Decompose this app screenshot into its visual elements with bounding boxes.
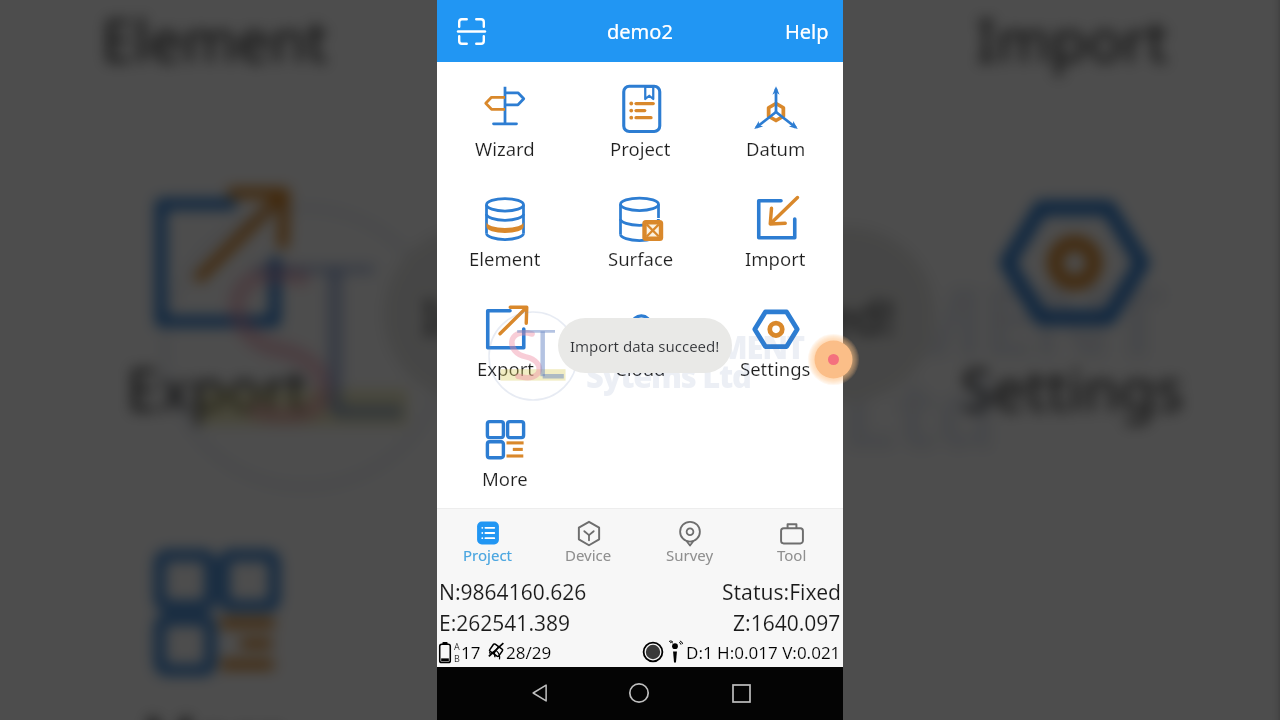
button[interactable]: More [437,414,573,508]
staticText: Sytems Ltd [472,344,995,477]
staticText: Import [745,246,806,271]
staticText: Datum [746,136,806,161]
button[interactable]: Scan [453,13,489,49]
button[interactable]: Element [0,0,431,183]
staticText: Wizard [475,136,535,161]
button[interactable]: Surface [573,194,708,304]
staticText: MEASUREMENT [447,252,1163,385]
staticText: N:9864160.626 [439,578,587,607]
staticText: Surface [608,246,674,271]
staticText: Settings [960,347,1186,427]
staticText: Import [976,0,1170,78]
staticText: Device [565,545,612,565]
staticText: Import data succeed! [422,284,897,347]
staticText: Settings [740,356,811,381]
button[interactable]: Export [0,183,431,531]
staticText: demo2 [607,18,673,45]
staticText: Survey [666,545,714,565]
button[interactable]: Element [437,194,573,304]
staticText: Status:Fixed [722,578,841,607]
staticText: Tool [777,545,807,565]
staticText: 28/29 [506,641,552,664]
staticText: Project [463,545,512,565]
staticText: More [143,696,288,720]
staticText: Element [101,0,330,78]
staticText: Project [610,136,671,161]
button[interactable]: Cloud [431,183,859,531]
staticText: More [482,466,528,491]
button[interactable]: Recents [717,669,765,717]
staticText: Cloud [564,347,726,427]
button[interactable]: Settings [708,304,843,414]
button[interactable]: Settings [859,183,1280,531]
button[interactable]: Surface [431,0,859,183]
button[interactable]: Project [573,84,708,194]
button[interactable]: Tool [741,508,843,570]
staticText: Sytems Ltd [586,355,751,397]
staticText: Z:1640.097 [733,609,841,638]
button[interactable]: Survey [639,508,741,570]
button[interactable]: Help [771,10,843,53]
button[interactable]: Datum [708,84,843,194]
button[interactable]: Export [437,304,573,414]
staticText: Surface [542,0,751,78]
staticText: MEASUREMENT [578,326,804,368]
button[interactable]: More [0,531,431,720]
staticText: Cloud [615,356,666,381]
button[interactable]: Project [437,508,538,570]
button[interactable]: Import [859,0,1280,183]
staticText: B [454,652,460,664]
staticText: 17 [461,641,481,664]
staticText: Export [127,347,307,427]
button[interactable]: Cloud [573,304,708,414]
button[interactable]: Device [538,508,639,570]
staticText: Import data succeed! [570,336,720,356]
staticText: A [454,640,460,652]
staticText: Help [785,18,829,45]
button[interactable]: Back [516,669,564,717]
button[interactable]: Wizard [437,84,573,194]
staticText: D:1 H:0.017 V:0.021 [686,641,841,664]
staticText: E:262541.389 [439,609,571,638]
button[interactable]: Import [708,194,843,304]
button[interactable]: Home [615,669,663,717]
staticText: Element [469,246,541,271]
staticText: Export [477,356,534,381]
